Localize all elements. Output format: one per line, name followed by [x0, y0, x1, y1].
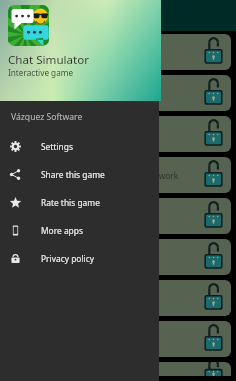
button[interactable]: Gift	[5, 239, 231, 275]
button[interactable]: Pool	[5, 198, 231, 234]
button[interactable]: Night	[5, 362, 231, 381]
staticText: Privacy policy	[41, 253, 95, 264]
staticText: Chat Simulator	[8, 52, 90, 68]
staticText: More apps	[41, 225, 83, 236]
button[interactable]: Share this game	[0, 160, 159, 188]
staticText: Vázquez Software	[11, 111, 83, 123]
staticText: Rate this game	[41, 197, 100, 208]
staticText: Interactive game	[8, 67, 74, 78]
button[interactable]: Homework	[5, 157, 231, 193]
button[interactable]: Cafe	[5, 280, 231, 316]
staticText: Date	[135, 88, 154, 99]
button[interactable]: Rate this game	[0, 188, 159, 216]
staticText: Settings	[41, 141, 73, 152]
button[interactable]: Bus	[5, 321, 231, 357]
staticText: Homework	[135, 170, 179, 181]
staticText: Share this game	[41, 169, 105, 180]
button[interactable]: Trip	[5, 116, 231, 152]
button[interactable]: Date	[5, 75, 231, 111]
button[interactable]: More apps	[0, 216, 159, 244]
button[interactable]: Settings	[0, 132, 159, 160]
staticText: Intro	[135, 47, 155, 58]
button[interactable]: Privacy policy	[0, 244, 159, 272]
button[interactable]: Intro	[5, 34, 231, 70]
